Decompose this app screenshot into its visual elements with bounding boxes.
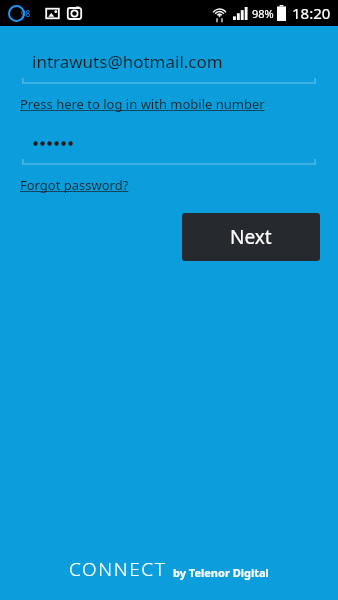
button[interactable] — [22, 129, 316, 165]
staticText: Forgot password? — [20, 176, 129, 194]
staticText: intrawuts@hotmail.com — [32, 50, 223, 73]
staticText: 98% — [252, 6, 274, 21]
button[interactable]: Next — [182, 213, 320, 261]
staticText: 98 — [21, 8, 31, 19]
staticText: Next — [230, 224, 272, 250]
button[interactable]: Forgot password? — [20, 176, 129, 194]
staticText: CONNECT — [69, 556, 167, 582]
staticText: 18:20 — [292, 3, 331, 23]
button[interactable]: Press here to log in with mobile number — [20, 95, 265, 113]
staticText: by Telenor Digital — [173, 565, 269, 580]
button[interactable]: intrawuts@hotmail.com — [22, 48, 316, 84]
staticText: Press here to log in with mobile number — [20, 95, 265, 113]
